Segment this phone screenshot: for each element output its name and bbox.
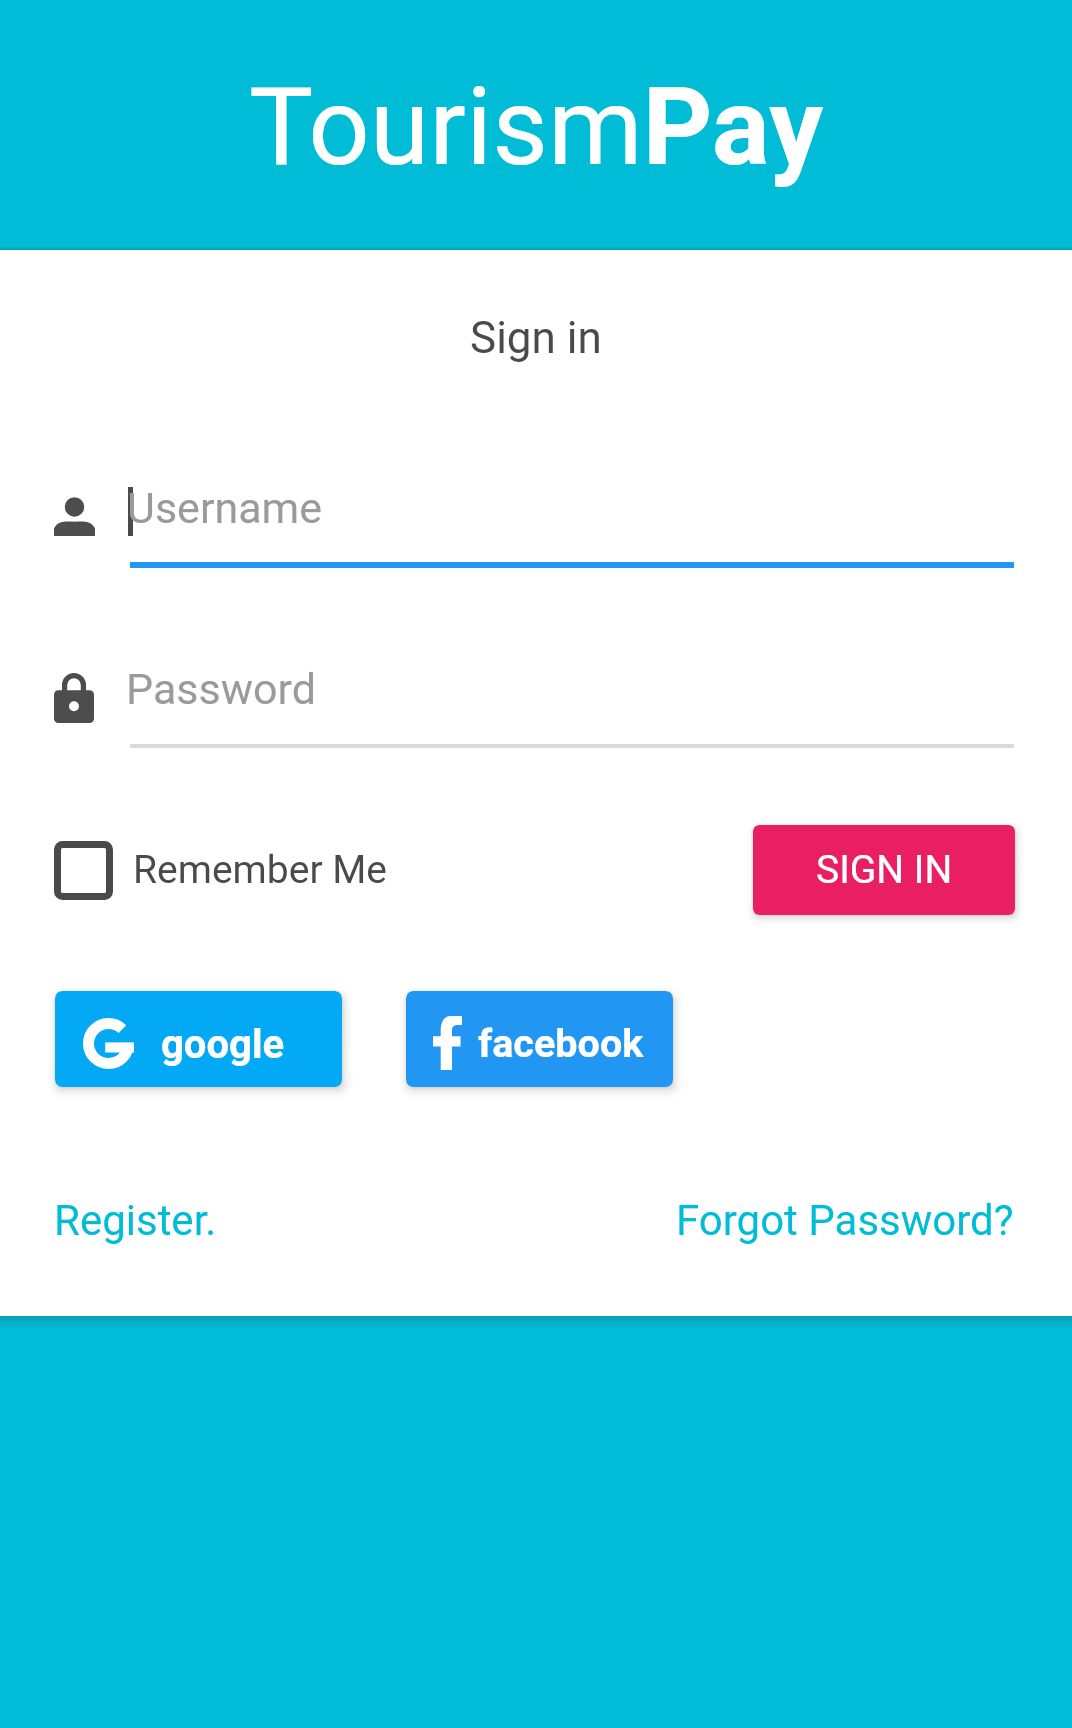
button[interactable]: Forgot Password? — [676, 1186, 1014, 1255]
staticText: facebook — [478, 1020, 644, 1066]
button[interactable]: Sign in with google — [55, 991, 342, 1087]
staticText: Username — [127, 483, 323, 533]
button[interactable]: Sign in with facebook — [406, 991, 673, 1087]
button[interactable]: Password field — [54, 656, 1014, 748]
staticText: Remember Me — [133, 847, 387, 893]
staticText: google — [161, 1021, 285, 1068]
staticText: Forgot Password? — [676, 1196, 1014, 1245]
staticText: TourismPay — [249, 64, 824, 191]
staticText: Password — [126, 664, 316, 714]
staticText: SIGN IN — [816, 847, 953, 893]
button[interactable]: Username field — [54, 472, 1014, 568]
button[interactable]: SIGN IN — [753, 825, 1015, 915]
staticText: Register. — [54, 1196, 217, 1245]
button[interactable]: Register. — [54, 1186, 217, 1255]
staticText: Sign in — [470, 312, 602, 364]
button[interactable]: Remember Me — [54, 836, 387, 904]
